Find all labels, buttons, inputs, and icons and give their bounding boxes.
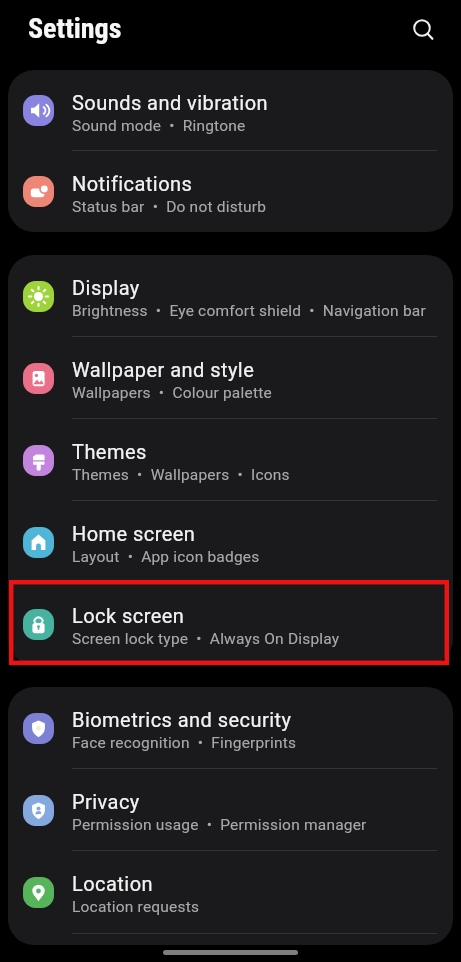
staticText: Privacy [72, 790, 140, 813]
button[interactable]: Wallpaper and style [8, 337, 453, 419]
staticText: Location requests [72, 898, 200, 916]
staticText: Location [72, 872, 153, 895]
staticText: Screen lock type • Always On Display [72, 630, 340, 648]
staticText: Wallpapers • Colour palette [72, 384, 272, 402]
staticText: Sound mode • Ringtone [72, 117, 246, 135]
staticText: Display [72, 276, 140, 299]
staticText: Notifications [72, 172, 193, 195]
button[interactable]: Display [8, 255, 453, 337]
button[interactable]: Biometrics and security [8, 687, 453, 769]
button[interactable]: Lock screen [8, 583, 453, 665]
button[interactable]: Notifications [8, 151, 453, 232]
staticText: Permission usage • Permission manager [72, 816, 367, 834]
button[interactable]: Privacy [8, 769, 453, 851]
staticText: Home screen [72, 522, 196, 545]
button[interactable]: Sounds and vibration [8, 70, 453, 151]
staticText: Biometrics and security [72, 708, 292, 731]
staticText: Sounds and vibration [72, 91, 268, 114]
staticText: Themes [72, 440, 147, 463]
staticText: Status bar • Do not disturb [72, 198, 267, 216]
staticText: Layout • App icon badges [72, 548, 260, 566]
staticText: Wallpaper and style [72, 358, 255, 381]
staticText: Face recognition • Fingerprints [72, 734, 297, 752]
staticText: Lock screen [72, 604, 185, 627]
button[interactable]: Location [8, 851, 453, 933]
staticText: Themes • Wallpapers • Icons [72, 466, 290, 484]
staticText: Brightness • Eye comfort shield • Naviga… [72, 302, 426, 320]
button[interactable] [401, 8, 443, 50]
staticText: Settings [28, 12, 122, 45]
button[interactable]: Themes [8, 419, 453, 501]
button[interactable]: Home screen [8, 501, 453, 583]
